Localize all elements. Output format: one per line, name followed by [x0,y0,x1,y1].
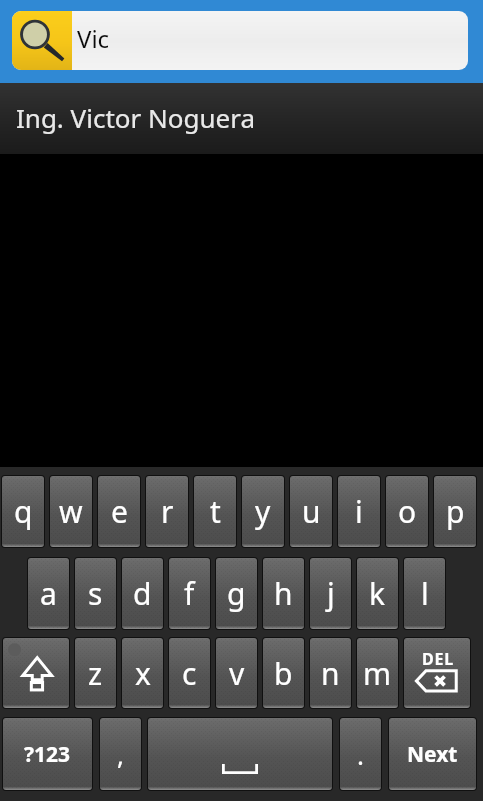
button[interactable]: Next [388,717,477,791]
staticText: ?123 [24,740,71,769]
staticText: j [327,573,335,614]
button[interactable]: f [168,557,211,630]
staticText: h [274,573,293,614]
button[interactable]: g [215,557,258,630]
button[interactable]: x [121,637,164,709]
staticText: , [117,737,124,772]
button[interactable]: o [385,475,429,548]
staticText: Vic [77,22,110,55]
button[interactable]: Space [147,717,333,791]
button[interactable]: ?123 [2,717,93,791]
staticText: m [363,653,392,694]
button[interactable]: Ing. Victor Noguera [0,83,483,154]
staticText: r [161,491,174,532]
button[interactable]: t [193,475,237,548]
staticText: k [369,573,386,614]
staticText: x [135,653,151,694]
staticText: Ing. Victor Noguera [16,100,256,135]
button[interactable]: z [74,637,117,709]
button[interactable]: j [309,557,352,630]
button[interactable]: Search [12,11,72,70]
staticText: o [398,491,417,532]
staticText: g [227,573,246,614]
staticText: e [111,491,128,532]
staticText: l [421,573,429,614]
button[interactable]: y [241,475,285,548]
button[interactable]: r [145,475,189,548]
staticText: i [355,491,363,532]
staticText: n [321,653,340,694]
button[interactable]: c [168,637,211,709]
staticText: p [446,491,465,532]
staticText: f [184,573,195,614]
staticText: b [274,653,293,694]
button[interactable]: i [337,475,381,548]
button[interactable]: k [356,557,399,630]
button[interactable]: v [215,637,258,709]
staticText: z [88,653,103,694]
staticText: w [59,491,83,532]
staticText: q [14,491,33,532]
button[interactable]: d [121,557,164,630]
button[interactable]: p [433,475,477,548]
staticText: a [40,573,57,614]
staticText: t [210,491,221,532]
button[interactable]: q [1,475,45,548]
staticText: Next [407,740,458,769]
button[interactable]: a [27,557,70,630]
button[interactable]: . [339,717,382,791]
staticText: u [302,491,321,532]
staticText: d [133,573,152,614]
button[interactable]: l [403,557,446,630]
button[interactable]: Delete [403,637,471,709]
button[interactable]: b [262,637,305,709]
button[interactable]: h [262,557,305,630]
button[interactable]: s [74,557,117,630]
staticText: . [357,737,364,772]
staticText: DEL [422,648,455,670]
button[interactable]: , [99,717,142,791]
button[interactable]: n [309,637,352,709]
button[interactable]: e [97,475,141,548]
staticText: y [255,491,271,532]
staticText: v [229,653,245,694]
button[interactable]: m [356,637,399,709]
button[interactable]: u [289,475,333,548]
button[interactable]: w [49,475,93,548]
button[interactable]: Search [12,11,468,70]
button[interactable]: Shift [2,637,70,709]
staticText: s [88,573,103,614]
staticText: c [182,653,197,694]
